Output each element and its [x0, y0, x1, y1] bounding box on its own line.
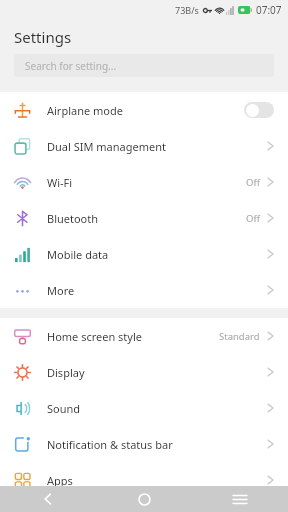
- staticText: Off: [246, 176, 260, 189]
- button[interactable]: Notification & status bar: [0, 426, 288, 462]
- button[interactable]: Search for setting...: [14, 54, 274, 77]
- staticText: 73B/s: [175, 4, 199, 16]
- staticText: Apps: [47, 473, 73, 488]
- button[interactable]: Back: [0, 486, 96, 512]
- button[interactable]: Dual SIM management: [0, 128, 288, 164]
- button[interactable]: Sound: [0, 390, 288, 426]
- staticText: Sound: [47, 401, 81, 416]
- staticText: Wi-Fi: [47, 175, 73, 190]
- button[interactable]: Home screen style: [0, 318, 288, 354]
- staticText: Airplane mode: [47, 103, 123, 118]
- button[interactable]: Apps: [0, 462, 288, 498]
- staticText: Search for setting...: [25, 59, 117, 73]
- staticText: Bluetooth: [47, 211, 99, 226]
- button[interactable]: Recent apps: [192, 486, 288, 512]
- staticText: Mobile data: [47, 247, 109, 262]
- button[interactable]: More: [0, 272, 288, 308]
- button[interactable]: Wi-Fi: [0, 164, 288, 200]
- button[interactable]: Mobile data: [0, 236, 288, 272]
- staticText: Standard: [219, 330, 260, 343]
- staticText: Notification & status bar: [47, 437, 173, 452]
- button[interactable]: Airplane mode toggle: [244, 102, 274, 118]
- button[interactable]: Bluetooth: [0, 200, 288, 236]
- staticText: 07:07: [256, 3, 282, 17]
- staticText: Display: [47, 365, 85, 380]
- staticText: Settings: [14, 27, 72, 47]
- button[interactable]: Airplane mode: [0, 92, 288, 128]
- button[interactable]: Home: [96, 486, 192, 512]
- button[interactable]: Display: [0, 354, 288, 390]
- staticText: Home screen style: [47, 329, 142, 344]
- staticText: Off: [246, 212, 260, 225]
- staticText: More: [47, 283, 75, 298]
- staticText: Dual SIM management: [47, 139, 166, 154]
